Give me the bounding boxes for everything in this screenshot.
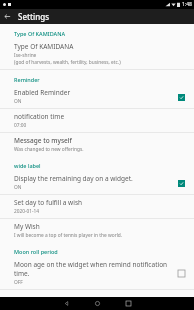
staticText: OFF bbox=[14, 279, 23, 286]
staticText: 07:00 bbox=[14, 122, 27, 129]
staticText: wide label bbox=[14, 162, 41, 169]
staticText: Settings bbox=[18, 11, 50, 22]
button[interactable]: Back bbox=[60, 297, 73, 310]
staticText: (god of harvests, wealth, fertility, bus… bbox=[14, 59, 121, 66]
staticText: Set day to fulfill a wish bbox=[14, 198, 83, 207]
button[interactable]: Message to myself bbox=[0, 133, 194, 156]
staticText: Moon roll period bbox=[14, 248, 58, 255]
button[interactable]: Type Of KAMIDANA bbox=[0, 39, 194, 69]
staticText: Ise-shrine bbox=[14, 52, 37, 59]
button[interactable]: Enabled Reminder bbox=[0, 85, 194, 108]
staticText: ON bbox=[14, 184, 22, 191]
staticText: 1:48 bbox=[182, 1, 192, 8]
staticText: I will become a top of tennis player in … bbox=[14, 232, 123, 239]
staticText: 2020-01-14 bbox=[14, 208, 40, 215]
button[interactable]: Moon age on the widget when remind notif… bbox=[0, 257, 194, 289]
staticText: Reminder bbox=[14, 76, 40, 83]
button[interactable]: notification time bbox=[0, 109, 194, 132]
button[interactable]: Toggle bbox=[174, 266, 188, 280]
staticText: notification time bbox=[14, 112, 65, 121]
staticText: Was changed to new offerings. bbox=[14, 146, 84, 153]
button[interactable]: My Wish bbox=[0, 219, 194, 242]
button[interactable]: Home bbox=[91, 297, 104, 310]
button[interactable]: Display the remaining day on a widget. bbox=[0, 171, 194, 194]
staticText: Enabled Reminder bbox=[14, 88, 71, 97]
staticText: Message to myself bbox=[14, 136, 72, 145]
staticText: My Wish bbox=[14, 222, 40, 231]
staticText: Type Of KAMIDANA bbox=[14, 42, 74, 51]
button[interactable]: Toggle bbox=[174, 90, 188, 104]
button[interactable]: Toggle bbox=[174, 176, 188, 190]
button[interactable]: Recent apps bbox=[122, 297, 135, 310]
staticText: Display the remaining day on a widget. bbox=[14, 174, 133, 183]
button[interactable]: Back bbox=[0, 9, 15, 24]
staticText: Type Of KAMIDANA bbox=[14, 30, 66, 37]
button[interactable]: Set day to fulfill a wish bbox=[0, 195, 194, 218]
staticText: ON bbox=[14, 98, 22, 105]
staticText: Moon age on the widget when remind notif… bbox=[14, 260, 174, 278]
